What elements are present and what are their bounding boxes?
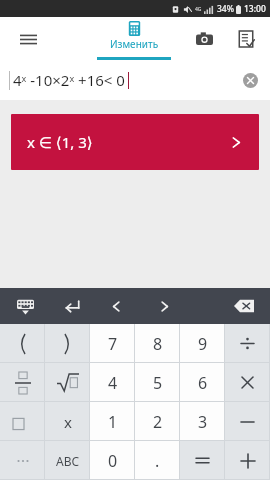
button[interactable]: 1 bbox=[90, 402, 135, 441]
button[interactable]: 9 bbox=[180, 324, 225, 363]
button[interactable]: Backspace bbox=[228, 290, 260, 322]
button[interactable]: Camera bbox=[186, 21, 222, 57]
button[interactable]: key bbox=[0, 441, 45, 480]
button[interactable]: key bbox=[225, 324, 270, 363]
staticText: ABC bbox=[56, 453, 80, 469]
staticText: 34% bbox=[217, 3, 234, 15]
button[interactable]: key bbox=[45, 363, 90, 402]
button[interactable]: 2 bbox=[135, 402, 180, 441]
button[interactable]: Enter bbox=[57, 291, 87, 321]
staticText: 4G bbox=[195, 6, 202, 13]
button[interactable]: key bbox=[0, 324, 45, 363]
staticText: Изменить bbox=[110, 37, 159, 51]
staticText: x bbox=[64, 412, 72, 432]
staticText: 5 bbox=[153, 372, 163, 394]
button[interactable]: x ∈ ⟨1, 3⟩ bbox=[11, 114, 259, 170]
button[interactable]: 7 bbox=[90, 324, 135, 363]
button[interactable]: key bbox=[45, 402, 90, 441]
button[interactable]: Menu bbox=[10, 21, 46, 57]
button[interactable]: key bbox=[45, 441, 90, 480]
button[interactable]: 6 bbox=[180, 363, 225, 402]
button[interactable]: Move right bbox=[149, 291, 179, 321]
button[interactable]: 0 bbox=[90, 441, 135, 480]
staticText: 0 bbox=[108, 450, 118, 472]
button[interactable]: 4 bbox=[90, 363, 135, 402]
button[interactable]: Move left bbox=[101, 291, 131, 321]
button[interactable]: History bbox=[228, 21, 264, 57]
button[interactable]: Hide keyboard bbox=[10, 291, 40, 321]
staticText: 1 bbox=[108, 411, 118, 433]
button[interactable]: key bbox=[45, 324, 90, 363]
staticText: 4 bbox=[108, 372, 118, 394]
staticText: 13:00 bbox=[244, 3, 266, 15]
staticText: 6 bbox=[198, 372, 208, 394]
button[interactable]: key bbox=[225, 363, 270, 402]
button[interactable]: . bbox=[135, 441, 180, 480]
staticText: . bbox=[155, 450, 160, 472]
button[interactable]: key bbox=[0, 363, 45, 402]
other: Details bbox=[230, 136, 243, 149]
staticText: 4x -10×2x +16< 0 bbox=[13, 70, 125, 90]
button[interactable]: key bbox=[0, 402, 45, 441]
button[interactable]: 3 bbox=[180, 402, 225, 441]
staticText: 7 bbox=[108, 333, 118, 355]
button[interactable]: Изменить bbox=[97, 17, 171, 60]
button[interactable]: key bbox=[180, 441, 225, 480]
staticText: 2 bbox=[153, 411, 163, 433]
staticText: 9 bbox=[198, 333, 208, 355]
button[interactable]: key bbox=[225, 402, 270, 441]
staticText: x ∈ ⟨1, 3⟩ bbox=[27, 132, 93, 152]
staticText: 3 bbox=[198, 411, 208, 433]
button[interactable]: 5 bbox=[135, 363, 180, 402]
button[interactable]: Clear bbox=[239, 69, 261, 91]
staticText: 8 bbox=[153, 333, 163, 355]
button[interactable]: key bbox=[225, 441, 270, 480]
button[interactable]: 8 bbox=[135, 324, 180, 363]
